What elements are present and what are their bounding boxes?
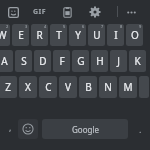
staticText: 4 [44,24,47,29]
button[interactable]: M [119,76,137,98]
staticText: T [56,28,62,42]
staticText: 8 [120,24,123,29]
staticText: 7 [101,24,104,29]
staticText: D [39,54,47,68]
button[interactable]: G [72,50,89,72]
button[interactable]: More options [120,1,142,23]
button[interactable]: Google [42,119,128,139]
button[interactable] [139,76,149,98]
staticText: X [25,80,31,94]
button[interactable]: K [129,50,146,72]
button[interactable]: Y [69,24,86,46]
staticText: A [1,54,8,68]
staticText: R [36,28,43,42]
button[interactable]: J [110,50,127,72]
staticText: 3 [25,24,28,29]
staticText: F [59,54,65,68]
button[interactable]: S [15,50,32,72]
button[interactable]: X [19,76,37,98]
staticText: Google [72,124,99,135]
button[interactable]: F [53,50,70,72]
staticText: B [85,80,92,94]
button[interactable]: R [31,24,48,46]
staticText: Z [5,80,11,94]
staticText: 2 [6,24,9,29]
button[interactable]: E [12,24,29,46]
button[interactable]: . [132,116,148,142]
staticText: O [131,28,139,42]
staticText: 9 [139,24,142,29]
staticText: Y [75,28,81,42]
button[interactable]: Clipboard [56,1,78,23]
button[interactable]: B [79,76,97,98]
staticText: W [0,28,7,42]
button[interactable]: GIF [29,1,51,23]
staticText: K [134,54,141,68]
button[interactable]: C [39,76,57,98]
button[interactable]: D [34,50,51,72]
staticText: N [104,80,112,94]
button[interactable]: Emoji [18,119,38,139]
button[interactable]: T [50,24,67,46]
staticText: U [93,28,101,42]
staticText: V [65,80,71,94]
staticText: . [139,123,142,135]
button[interactable]: H [91,50,108,72]
button[interactable]: V [59,76,77,98]
staticText: 5 [63,24,66,29]
staticText: G [77,54,85,68]
button[interactable]: Stickers [2,1,24,23]
button[interactable]: Z [0,76,17,98]
button[interactable]: U [88,24,105,46]
button[interactable]: O [126,24,143,46]
staticText: M [123,80,133,94]
staticText: C [45,80,52,94]
staticText: 6 [82,24,85,29]
staticText: GIF [33,7,47,17]
staticText: H [96,54,104,68]
button[interactable]: Settings [84,1,106,23]
button[interactable]: A [0,50,13,72]
button[interactable]: N [99,76,117,98]
button[interactable]: , [2,116,18,142]
staticText: S [21,54,27,68]
staticText: E [18,28,24,42]
button[interactable]: W [0,24,10,46]
staticText: J [117,54,120,68]
staticText: , [9,121,12,133]
staticText: I [114,28,118,42]
button[interactable]: I [107,24,124,46]
